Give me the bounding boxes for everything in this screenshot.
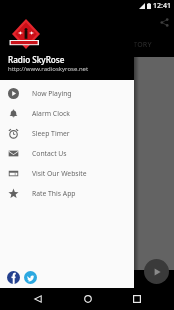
button[interactable]: Rate This App [0,183,134,203]
staticText: Visit Our Website [32,169,87,178]
staticText: Rate This App [32,189,76,198]
staticText: Sleep Timer [32,129,70,138]
staticText: Now Playing [32,89,72,98]
button[interactable]: Back [29,290,46,307]
staticText: Radio SkyRose [8,54,65,65]
button[interactable]: Visit Our Website [0,163,134,183]
button[interactable]: Now Playing [0,83,134,103]
button[interactable]: Twitter [24,271,37,284]
staticText: Alarm Clock [32,109,70,118]
staticText: 12:41 [153,1,171,11]
button[interactable]: Recents [128,290,145,307]
button[interactable]: Contact Us [0,143,134,163]
staticText: http://www.radioskyrose.net [8,65,89,73]
button[interactable]: Alarm Clock [0,103,134,123]
staticText: Contact Us [32,149,67,158]
button[interactable]: Share [156,14,172,30]
button[interactable]: Sleep Timer [0,123,134,143]
button[interactable]: Play [144,259,169,284]
button[interactable]: Home [79,290,96,307]
button[interactable]: Facebook [7,271,20,284]
staticText: HISTORY [121,40,152,50]
